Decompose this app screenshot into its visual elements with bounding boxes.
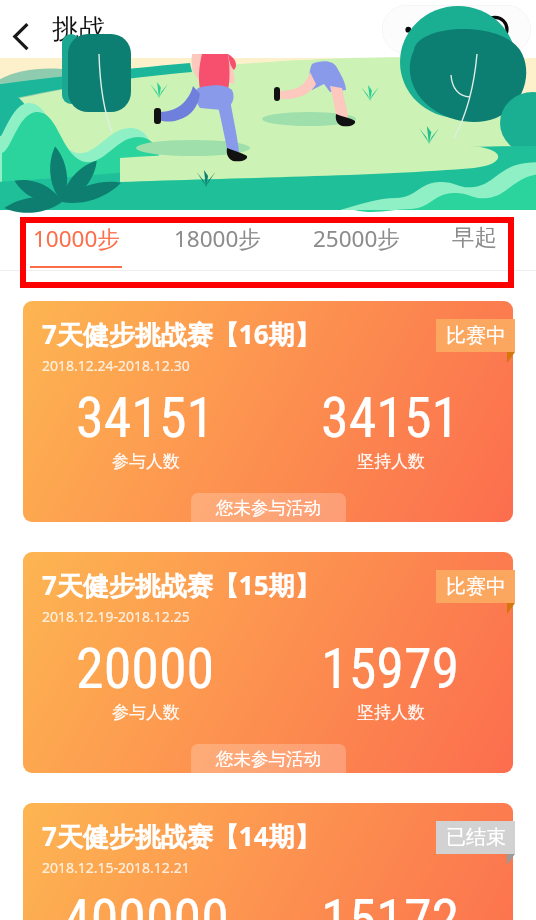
staticText: 25000步 [313,223,400,254]
button[interactable]: 7天健步挑战赛【16期】 [23,301,513,522]
button[interactable]: Back [0,7,44,51]
staticText: 18000步 [174,223,261,254]
button[interactable]: 18000步 [174,205,261,271]
button[interactable]: 比赛中 [436,319,515,352]
staticText: 坚持人数 [357,451,425,472]
staticText: 您未参与活动 [216,748,321,770]
staticText: 15979 [321,636,460,702]
staticText: 挑战 [52,12,106,46]
staticText: 34151 [321,385,460,451]
button[interactable]: 25000步 [313,205,400,271]
staticText: 比赛中 [446,323,506,348]
staticText: 您未参与活动 [216,497,321,519]
staticText: 早起 [452,223,497,251]
button[interactable]: 10000步 [30,205,122,271]
button[interactable]: 7天健步挑战赛【14期】 [23,803,513,920]
staticText: 20000 [76,636,215,702]
staticText: 34151 [76,385,215,451]
staticText: 400000 [63,887,229,920]
staticText: 2018.12.24-2018.12.30 [42,356,190,375]
staticText: 7天健步挑战赛【14期】 [42,818,321,854]
staticText: 15172 [321,887,460,920]
button[interactable]: 7天健步挑战赛【15期】 [23,552,513,773]
staticText: 7天健步挑战赛【15期】 [42,567,321,603]
button[interactable]: 已结束 [436,821,515,854]
staticText: 7天健步挑战赛【16期】 [42,316,321,352]
staticText: 2018.12.19-2018.12.25 [42,607,190,626]
staticText: 2018.12.15-2018.12.21 [42,858,190,877]
button[interactable]: 比赛中 [436,570,515,603]
button[interactable]: 早起 [452,205,497,271]
button[interactable]: More options [382,5,457,54]
button[interactable]: 您未参与活动 [191,744,346,773]
staticText: 坚持人数 [357,702,425,723]
staticText: 已结束 [446,825,506,850]
staticText: 参与人数 [112,702,180,723]
staticText: 10000步 [33,223,120,254]
staticText: 比赛中 [446,574,506,599]
staticText: 参与人数 [112,451,180,472]
button[interactable]: 您未参与活动 [191,493,346,522]
button[interactable]: Close mini program [457,5,531,54]
